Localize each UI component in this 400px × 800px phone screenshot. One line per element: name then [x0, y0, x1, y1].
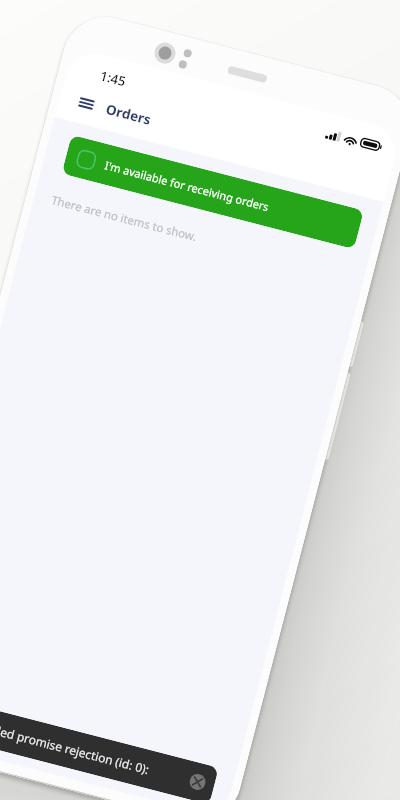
staticText: I'm available for receiving orders — [103, 157, 271, 214]
staticText: Orders — [104, 100, 153, 129]
staticText: There are no items to show. — [50, 192, 199, 245]
button[interactable]: Dismiss — [188, 772, 207, 792]
staticText: Possible Unhandled promise rejection (id… — [0, 699, 151, 777]
button[interactable]: Open navigation menu — [71, 89, 100, 118]
button[interactable]: I'm available for receiving orders — [62, 135, 364, 249]
staticText: 1:45 — [98, 66, 128, 90]
